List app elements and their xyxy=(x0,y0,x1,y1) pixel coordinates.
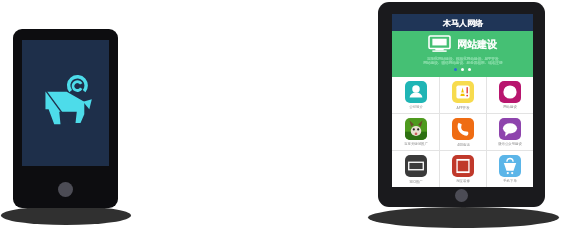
button[interactable]: 木马人网络 xyxy=(392,14,533,31)
button[interactable]: 淘宝装修 xyxy=(440,151,486,187)
button[interactable]: SEO推广 xyxy=(392,151,439,187)
staticText: 定制化网站建设、模板化网站建设、APP开发 xyxy=(427,56,499,61)
button[interactable]: 木马人网络 xyxy=(378,2,545,207)
button[interactable]: 微信公众号建设 xyxy=(487,114,533,150)
button[interactable]: Home xyxy=(58,182,73,197)
staticText: 网站建设 xyxy=(503,105,517,109)
staticText: 百度关键词推广 xyxy=(404,142,428,146)
button[interactable]: Home xyxy=(455,189,468,202)
button[interactable]: Home xyxy=(13,29,118,208)
staticText: 网站建设 xyxy=(457,38,497,51)
button[interactable]: APP开发 xyxy=(440,77,486,113)
staticText: 400电话 xyxy=(457,142,470,147)
button[interactable]: 百度关键词推广 xyxy=(392,114,439,150)
staticText: 网站建设、微信网站建设、服务器租用、域名注册 xyxy=(423,61,503,66)
staticText: 淘宝装修 xyxy=(456,179,470,183)
staticText: SEO推广 xyxy=(409,179,423,184)
staticText: 微信公众号建设 xyxy=(498,142,522,146)
staticText: 手机下单 xyxy=(503,179,517,183)
staticText: APP开发 xyxy=(456,105,470,110)
button[interactable]: 公司简介 xyxy=(392,77,439,113)
button[interactable]: 400电话 xyxy=(440,114,486,150)
staticText: 木马人网络 xyxy=(443,18,483,28)
button[interactable]: 网站建设 xyxy=(487,77,533,113)
staticText: 公司简介 xyxy=(409,105,423,109)
button[interactable]: 手机下单 xyxy=(487,151,533,187)
